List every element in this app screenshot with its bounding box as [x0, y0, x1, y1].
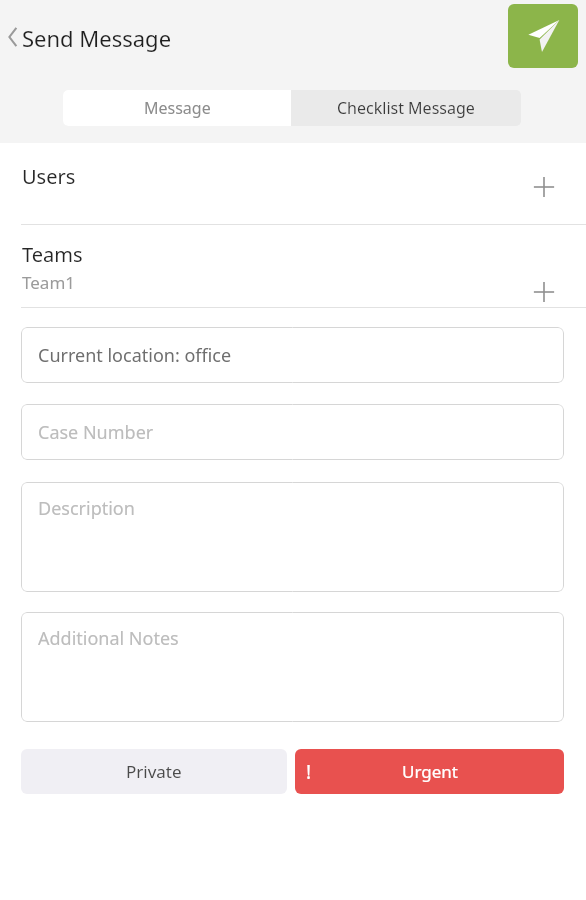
staticText: Description — [38, 496, 135, 521]
staticText: Current location: office — [38, 343, 232, 368]
button[interactable]: Additional Notes — [21, 612, 564, 722]
staticText: Checklist Message — [337, 97, 475, 119]
staticText: Users — [22, 163, 76, 190]
button[interactable]: Add user — [524, 167, 564, 207]
button[interactable]: Users — [0, 143, 586, 224]
staticText: Case Number — [38, 420, 154, 445]
button[interactable]: Current location: office — [21, 327, 564, 383]
button[interactable]: Teams — [0, 225, 586, 307]
staticText: ! — [306, 759, 312, 785]
staticText: Teams — [22, 241, 83, 268]
button[interactable]: Checklist Message — [291, 90, 521, 126]
staticText: Message — [144, 97, 211, 119]
staticText: Team1 — [22, 271, 76, 294]
button[interactable]: Description — [21, 482, 564, 592]
button[interactable]: Add team — [524, 272, 564, 312]
button[interactable]: Case Number — [21, 404, 564, 460]
button[interactable]: Private — [21, 749, 287, 794]
staticText: Urgent — [402, 760, 458, 783]
staticText: Additional Notes — [38, 626, 179, 651]
staticText: Send Message — [22, 23, 172, 53]
button[interactable]: Back — [2, 16, 24, 58]
button[interactable]: ! — [295, 749, 564, 794]
staticText: Private — [126, 760, 182, 783]
button[interactable]: Send — [508, 4, 578, 68]
button[interactable]: Message — [63, 90, 291, 126]
